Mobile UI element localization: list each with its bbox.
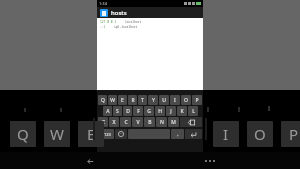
button[interactable]: Q <box>10 121 36 147</box>
button[interactable]: Q <box>98 95 107 105</box>
button[interactable]: L <box>188 106 198 116</box>
staticText: J <box>170 108 172 115</box>
button[interactable]: O <box>247 121 273 147</box>
staticText: O <box>254 124 266 144</box>
button[interactable]: W <box>44 121 70 147</box>
button[interactable]: E <box>118 95 127 105</box>
staticText: 127.0.0.1 <box>100 20 117 24</box>
button[interactable]: ?123 <box>98 129 114 139</box>
staticText: L <box>192 108 195 115</box>
button[interactable]: F <box>133 106 143 116</box>
button[interactable]: P <box>281 121 300 147</box>
button[interactable]: Back <box>82 153 98 169</box>
staticText: O <box>184 97 188 104</box>
button[interactable]: Recents <box>202 153 218 169</box>
staticText: F <box>137 108 140 115</box>
staticText: V <box>136 119 140 126</box>
button[interactable]: Key <box>180 117 202 127</box>
staticText: E <box>87 124 96 144</box>
staticText: C <box>124 119 128 126</box>
staticText: I <box>223 124 229 144</box>
button[interactable]: H <box>155 106 165 116</box>
staticText: M <box>171 119 176 126</box>
staticText: W <box>110 97 115 104</box>
staticText: hosts <box>111 9 127 17</box>
button[interactable]: I <box>170 95 180 105</box>
staticText: A <box>106 108 110 115</box>
staticText: Q <box>101 97 105 104</box>
button[interactable]: X <box>109 117 119 127</box>
button[interactable]: V <box>132 117 143 127</box>
button[interactable]: J <box>166 106 176 116</box>
button[interactable]: B <box>144 117 155 127</box>
button[interactable]: Key <box>115 129 127 139</box>
staticText: S <box>116 108 119 115</box>
staticText: I <box>174 97 176 104</box>
staticText: B <box>148 119 152 126</box>
button[interactable]: T <box>138 95 147 105</box>
button[interactable]: I <box>213 121 239 147</box>
staticText: Z <box>102 119 105 126</box>
button[interactable]: G <box>144 106 154 116</box>
button[interactable]: hosts <box>97 7 203 18</box>
staticText: E <box>121 97 124 104</box>
button[interactable]: R <box>128 95 137 105</box>
button[interactable]: U <box>159 95 169 105</box>
staticText: , <box>177 131 179 138</box>
staticText: localhost <box>125 20 142 24</box>
staticText: Q <box>17 124 29 144</box>
button[interactable]: S <box>113 106 122 116</box>
button[interactable]: Y <box>148 95 158 105</box>
staticText: N <box>160 119 164 126</box>
button[interactable]: P <box>192 95 202 105</box>
staticText: W <box>50 124 64 144</box>
button[interactable]: D <box>123 106 132 116</box>
staticText: G <box>147 108 151 115</box>
staticText: Y <box>152 97 155 104</box>
staticText: K <box>180 108 184 115</box>
staticText: P <box>289 124 299 144</box>
staticText: ::1 <box>100 25 106 29</box>
staticText: U <box>162 97 166 104</box>
button[interactable]: , <box>171 129 184 139</box>
button[interactable]: E <box>78 121 104 147</box>
button[interactable]: C <box>120 117 131 127</box>
staticText: ip6-localhost <box>114 25 138 29</box>
staticText: 1:34 <box>99 1 107 6</box>
button[interactable]: O <box>181 95 191 105</box>
staticText: ?123 <box>102 132 111 137</box>
button[interactable]: Z <box>98 117 108 127</box>
staticText: H <box>158 108 162 115</box>
button[interactable]: A <box>103 106 112 116</box>
button[interactable]: N <box>156 117 167 127</box>
button[interactable]: M <box>168 117 179 127</box>
button[interactable]: K <box>177 106 187 116</box>
staticText: T <box>141 97 144 104</box>
button[interactable]: Key <box>185 129 202 139</box>
button[interactable]: W <box>108 95 117 105</box>
staticText: D <box>126 108 130 115</box>
staticText: X <box>112 119 116 126</box>
staticText: P <box>195 97 199 104</box>
staticText: R <box>131 97 135 104</box>
